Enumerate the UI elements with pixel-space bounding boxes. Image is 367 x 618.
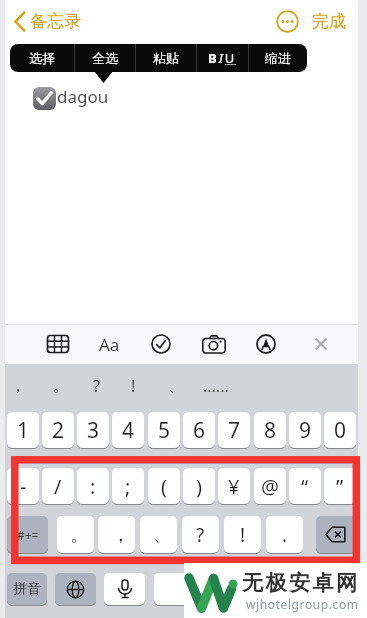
button[interactable]: @ [254, 468, 286, 504]
button[interactable]: 3 [77, 412, 109, 448]
button[interactable]: 、 [168, 368, 204, 404]
button[interactable] [33, 87, 56, 110]
button[interactable] [276, 10, 299, 33]
button[interactable]: 6 [183, 412, 215, 448]
staticText: 7 [228, 416, 241, 445]
staticText: #+= [17, 527, 39, 543]
button[interactable]: 缩进 [248, 44, 307, 72]
button[interactable]: ， [10, 368, 46, 404]
button[interactable] [256, 334, 276, 354]
staticText: ! [240, 522, 246, 548]
staticText: 4 [122, 416, 135, 445]
staticText: 拼音 [13, 580, 41, 598]
staticText: 2 [52, 416, 65, 445]
staticText: / [54, 473, 62, 500]
staticText: 无极安卓网 [242, 570, 360, 596]
button[interactable] [316, 516, 356, 553]
staticText: @ [261, 473, 279, 500]
staticText: ， [10, 376, 26, 396]
staticText: ? [196, 522, 205, 548]
staticText: ” [336, 473, 344, 500]
button[interactable]: 。 [53, 368, 89, 404]
button[interactable]: ; [112, 468, 144, 504]
button[interactable]: ， [98, 516, 135, 553]
staticText: 3 [87, 416, 100, 445]
staticText: - [20, 473, 27, 500]
button[interactable]: 选择 [10, 44, 74, 72]
staticText: “ [301, 473, 309, 500]
button[interactable] [55, 573, 96, 605]
button[interactable]: 全选 [74, 44, 135, 72]
staticText: 5 [158, 416, 171, 445]
button[interactable]: ! [131, 368, 167, 404]
staticText: 缩进 [265, 50, 291, 66]
staticText: . [282, 522, 288, 548]
staticText: 全选 [92, 50, 118, 66]
button[interactable]: / [42, 468, 74, 504]
button[interactable]: 、 [140, 516, 177, 553]
button[interactable]: 1 [7, 412, 39, 448]
button[interactable]: 粘贴 [135, 44, 196, 72]
button[interactable]: 拼音 [7, 573, 47, 605]
button[interactable]: 完成 [312, 11, 346, 32]
button[interactable]: : [77, 468, 109, 504]
staticText: 1 [17, 416, 30, 445]
staticText: BIU [208, 49, 237, 67]
staticText: 6 [193, 416, 206, 445]
button[interactable]: 8 [254, 412, 286, 448]
staticText: : [90, 473, 96, 500]
button[interactable] [151, 334, 171, 354]
staticText: ) [196, 473, 202, 500]
button[interactable]: 9 [289, 412, 321, 448]
button[interactable] [154, 573, 246, 605]
button[interactable]: 备忘录 [30, 11, 81, 32]
button[interactable]: 。 [57, 516, 94, 553]
button[interactable]: ...... [203, 368, 239, 404]
button[interactable]: - [7, 468, 39, 504]
button[interactable]: ? [182, 516, 219, 553]
button[interactable] [313, 336, 329, 352]
staticText: ， [111, 523, 130, 547]
button[interactable]: 0 [324, 412, 356, 448]
button[interactable]: 7 [218, 412, 250, 448]
button[interactable]: ” [324, 468, 356, 504]
staticText: 粘贴 [153, 50, 179, 66]
staticText: ¥ [228, 473, 240, 500]
staticText: 9 [299, 416, 312, 445]
button[interactable]: ¥ [218, 468, 250, 504]
staticText: ? [93, 375, 100, 397]
staticText: ; [125, 473, 131, 500]
staticText: 、 [168, 376, 184, 396]
button[interactable]: #+= [7, 516, 48, 553]
staticText: ...... [203, 375, 229, 397]
button[interactable]: BIU [196, 44, 248, 72]
staticText: 0 [334, 416, 347, 445]
staticText: wjhotelgroup.com [246, 596, 359, 612]
staticText: ( [161, 473, 167, 500]
button[interactable]: “ [289, 468, 321, 504]
button[interactable]: 4 [112, 412, 144, 448]
button[interactable]: 5 [148, 412, 180, 448]
button[interactable]: ( [148, 468, 180, 504]
button[interactable]: ! [224, 516, 261, 553]
button[interactable] [104, 573, 145, 605]
staticText: 选择 [29, 50, 55, 66]
button[interactable]: . [266, 516, 303, 553]
staticText: 8 [264, 416, 277, 445]
button[interactable] [202, 335, 226, 354]
staticText: dagou [57, 85, 109, 108]
staticText: ! [131, 375, 136, 397]
button[interactable]: 2 [42, 412, 74, 448]
button[interactable] [46, 333, 70, 355]
button[interactable]: Aa [99, 333, 120, 356]
button[interactable]: ? [93, 368, 129, 404]
staticText: 。 [53, 376, 69, 396]
button[interactable]: ) [183, 468, 215, 504]
staticText: 、 [153, 523, 172, 547]
staticText: 。 [70, 523, 89, 547]
